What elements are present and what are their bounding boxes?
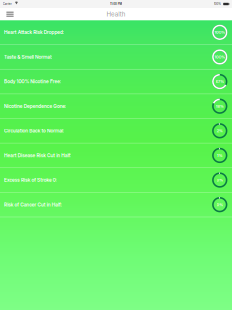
staticText: Excess Risk of Stroke 0: — [4, 241, 232, 288]
staticText: Circulation Back to Normal: — [4, 191, 232, 239]
button[interactable]: Nicotine Dependence Gone: — [0, 94, 232, 119]
staticText: Risk of Cancer Cut in Half: — [4, 265, 232, 310]
button[interactable]: Body 100% Nicotine Free: — [0, 69, 232, 94]
staticText: 100% — [225, 18, 232, 45]
staticText: Carrier — [3, 18, 74, 45]
button[interactable]: Circulation Back to Normal: — [0, 119, 232, 143]
staticText: 100% — [231, 66, 232, 105]
button[interactable]: Heart Attack Risk Dropped: — [0, 20, 232, 45]
button[interactable]: Excess Risk of Stroke 0: — [0, 168, 232, 193]
staticText: Body 100% Nicotine Free: — [4, 142, 232, 189]
staticText: Nicotine Dependence Gone: — [4, 167, 232, 214]
staticText: Taste & Smell Normal: — [4, 118, 232, 165]
staticText: Health — [180, 26, 232, 86]
staticText: 11:00 PM — [208, 18, 232, 45]
button[interactable]: Taste & Smell Normal: — [0, 45, 232, 69]
button[interactable]: Risk of Cancer Cut in Half: — [0, 193, 232, 217]
staticText: Heart Attack Risk Dropped: — [4, 93, 232, 140]
button[interactable]: Menu — [1, 8, 18, 20]
staticText: Heart Disease Risk Cut in Half: — [4, 216, 232, 263]
button[interactable]: Heart Disease Risk Cut in Half: — [0, 143, 232, 168]
staticText: 100% — [231, 91, 232, 130]
